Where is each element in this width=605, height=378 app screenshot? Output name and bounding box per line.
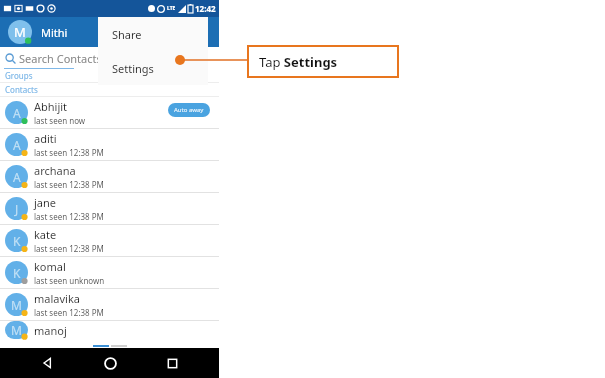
button[interactable]: M bbox=[0, 321, 219, 339]
button[interactable]: Recents bbox=[157, 348, 187, 378]
staticText: Auto away bbox=[174, 106, 204, 114]
staticText: last seen 12:38 PM bbox=[34, 147, 104, 158]
staticText: M bbox=[11, 297, 22, 313]
button[interactable]: K bbox=[0, 225, 219, 256]
staticText: last seen unknown bbox=[34, 275, 105, 286]
button[interactable]: J bbox=[0, 193, 219, 224]
staticText: Settings bbox=[112, 61, 154, 76]
staticText: A bbox=[13, 169, 21, 185]
button[interactable]: A bbox=[0, 129, 219, 160]
staticText: A bbox=[13, 137, 21, 153]
staticText: malavika bbox=[34, 291, 80, 306]
button[interactable]: Back bbox=[32, 348, 62, 378]
button[interactable]: Contacts bbox=[0, 83, 219, 96]
button[interactable]: Groups bbox=[0, 69, 219, 82]
staticText: last seen now bbox=[34, 115, 86, 126]
staticText: LTE bbox=[167, 5, 176, 12]
button[interactable]: Home bbox=[95, 348, 125, 378]
button[interactable]: M bbox=[0, 289, 219, 320]
staticText: A bbox=[13, 105, 21, 121]
button[interactable]: Auto away bbox=[168, 103, 210, 117]
staticText: jane bbox=[34, 195, 57, 210]
staticText: M bbox=[11, 322, 22, 338]
staticText: Share bbox=[112, 27, 142, 42]
staticText: K bbox=[13, 233, 21, 249]
staticText: K bbox=[13, 265, 21, 281]
button[interactable]: Search Contacts bbox=[0, 47, 219, 69]
button[interactable]: K bbox=[0, 257, 219, 288]
staticText: Tap Settings bbox=[259, 53, 338, 71]
button[interactable]: Settings bbox=[98, 51, 208, 85]
staticText: aditi bbox=[34, 131, 57, 146]
button[interactable]: Share bbox=[98, 17, 208, 51]
staticText: M bbox=[14, 23, 26, 41]
staticText: last seen 12:38 PM bbox=[34, 243, 104, 254]
button[interactable]: A bbox=[0, 161, 219, 192]
staticText: J bbox=[15, 201, 19, 217]
staticText: Groups bbox=[5, 70, 33, 81]
button[interactable]: M bbox=[0, 17, 219, 47]
staticText: archana bbox=[34, 163, 76, 178]
button[interactable]: A bbox=[0, 97, 219, 128]
staticText: Abhijit bbox=[34, 99, 68, 114]
staticText: manoj bbox=[34, 323, 67, 338]
staticText: kate bbox=[34, 227, 57, 242]
staticText: last seen 12:38 PM bbox=[34, 211, 104, 222]
staticText: Mithi bbox=[41, 25, 68, 40]
staticText: komal bbox=[34, 259, 66, 274]
staticText: Search Contacts bbox=[19, 51, 102, 66]
staticText: Contacts bbox=[5, 84, 38, 95]
staticText: last seen 12:38 PM bbox=[34, 307, 104, 318]
staticText: last seen 12:38 PM bbox=[34, 179, 104, 190]
staticText: 12:42 bbox=[195, 3, 216, 14]
